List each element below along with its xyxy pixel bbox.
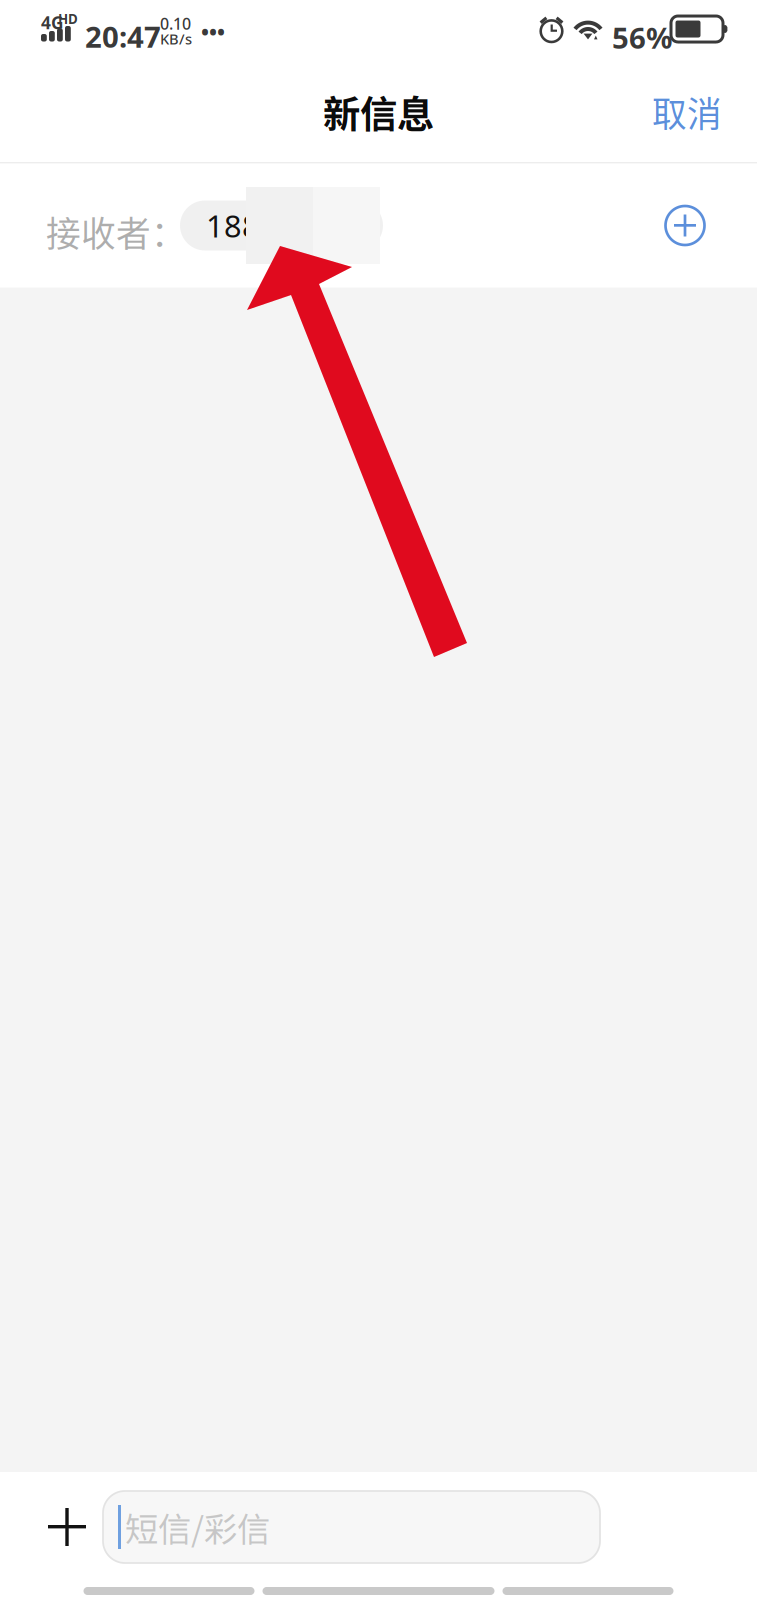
button[interactable]: 短信/彩信 <box>103 1491 600 1563</box>
button[interactable]: 188 <box>180 200 383 250</box>
button[interactable]: Add attachment <box>31 1491 103 1563</box>
staticText: 接收者： <box>46 206 186 257</box>
staticText: 56% <box>612 18 672 57</box>
staticText: 188 <box>206 205 260 246</box>
staticText: 4G <box>41 11 64 34</box>
staticText: 取消 <box>652 87 722 137</box>
staticText: 20:47 <box>85 17 161 56</box>
staticText: 0.10 <box>160 13 191 34</box>
staticText: ••• <box>201 18 225 46</box>
staticText: 新信息 <box>323 85 434 139</box>
staticText: KB/s <box>160 29 192 48</box>
staticText: 短信/彩信 <box>125 1503 270 1551</box>
staticText: HD <box>58 10 78 28</box>
button[interactable]: Add recipient <box>654 194 716 256</box>
button[interactable]: 取消 <box>634 71 740 153</box>
